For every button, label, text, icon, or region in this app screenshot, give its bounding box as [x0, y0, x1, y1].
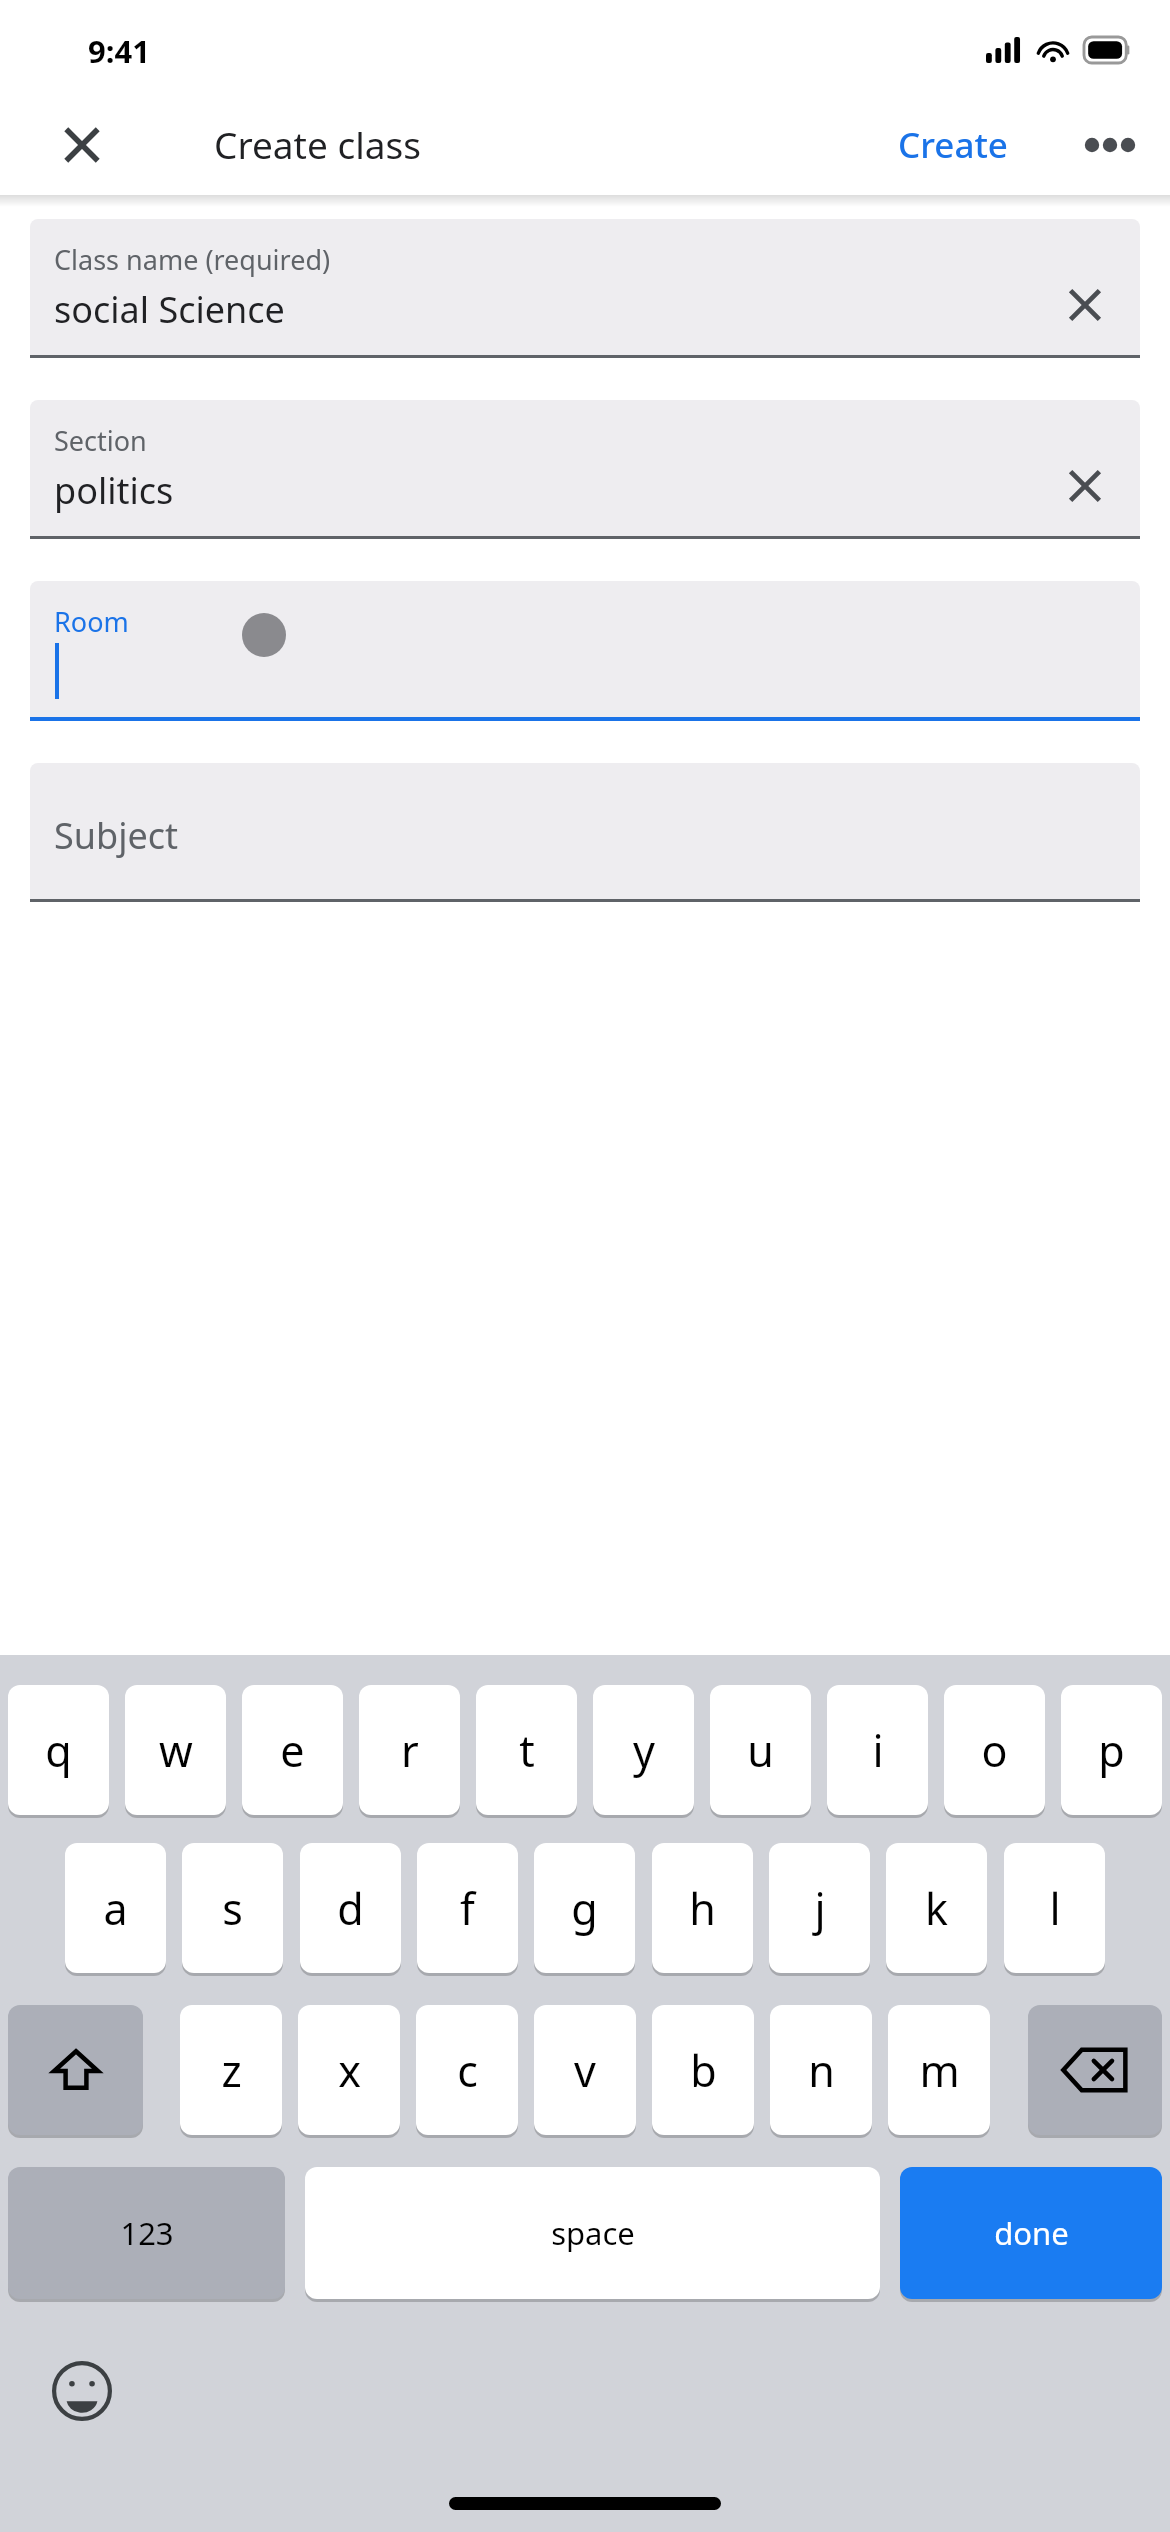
- staticText: p: [1098, 1721, 1125, 1780]
- button[interactable]: More options: [1064, 99, 1156, 191]
- staticText: u: [747, 1721, 774, 1780]
- button[interactable]: Clear text: [1046, 266, 1124, 344]
- staticText: Create: [898, 121, 1008, 169]
- button[interactable]: k: [886, 1843, 987, 1973]
- staticText: y: [633, 1721, 655, 1780]
- button[interactable]: Create: [884, 109, 1022, 181]
- staticText: t: [519, 1721, 535, 1780]
- staticText: k: [925, 1879, 948, 1938]
- button[interactable]: s: [182, 1843, 283, 1973]
- staticText: Section: [54, 422, 147, 459]
- staticText: s: [222, 1879, 243, 1938]
- staticText: w: [159, 1721, 193, 1780]
- staticText: o: [981, 1721, 1008, 1780]
- button[interactable]: i: [827, 1685, 928, 1815]
- button[interactable]: z: [180, 2005, 282, 2135]
- staticText: 9:41: [88, 30, 150, 72]
- staticText: i: [872, 1721, 884, 1780]
- staticText: l: [1049, 1879, 1061, 1938]
- staticText: politics: [54, 466, 174, 515]
- staticText: x: [338, 2041, 361, 2100]
- button[interactable]: f: [417, 1843, 518, 1973]
- button[interactable]: done: [900, 2167, 1162, 2299]
- button[interactable]: r: [359, 1685, 460, 1815]
- button[interactable]: u: [710, 1685, 811, 1815]
- button[interactable]: p: [1061, 1685, 1162, 1815]
- button[interactable]: x: [298, 2005, 400, 2135]
- staticText: v: [574, 2041, 596, 2100]
- staticText: q: [45, 1721, 72, 1780]
- staticText: a: [103, 1879, 128, 1938]
- button[interactable]: space: [305, 2167, 880, 2299]
- staticText: m: [919, 2041, 960, 2100]
- button[interactable]: o: [944, 1685, 1045, 1815]
- button[interactable]: Class name (required): [30, 219, 1140, 355]
- staticText: j: [814, 1879, 826, 1938]
- button[interactable]: 123: [8, 2167, 285, 2299]
- staticText: space: [551, 2212, 635, 2254]
- button[interactable]: Section: [30, 400, 1140, 536]
- button[interactable]: a: [65, 1843, 166, 1973]
- staticText: f: [460, 1879, 475, 1938]
- button[interactable]: w: [125, 1685, 226, 1815]
- button[interactable]: j: [769, 1843, 870, 1973]
- button[interactable]: l: [1004, 1843, 1105, 1973]
- button[interactable]: Subject: [30, 763, 1140, 899]
- button[interactable]: n: [770, 2005, 872, 2135]
- staticText: Create class: [214, 119, 421, 169]
- button[interactable]: e: [242, 1685, 343, 1815]
- staticText: z: [221, 2041, 242, 2100]
- button[interactable]: q: [8, 1685, 109, 1815]
- staticText: h: [689, 1879, 716, 1938]
- staticText: 123: [120, 2212, 174, 2254]
- button[interactable]: b: [652, 2005, 754, 2135]
- staticText: Subject: [54, 811, 179, 860]
- staticText: c: [457, 2041, 478, 2100]
- button[interactable]: Clear text: [1046, 447, 1124, 525]
- button[interactable]: Shift: [8, 2005, 143, 2135]
- button[interactable]: Backspace: [1028, 2005, 1162, 2135]
- button[interactable]: Close: [36, 99, 128, 191]
- button[interactable]: m: [888, 2005, 990, 2135]
- staticText: done: [994, 2212, 1069, 2254]
- button[interactable]: y: [593, 1685, 694, 1815]
- button[interactable]: t: [476, 1685, 577, 1815]
- button[interactable]: c: [416, 2005, 518, 2135]
- staticText: Room: [54, 603, 129, 640]
- staticText: Class name (required): [54, 241, 331, 278]
- staticText: social Science: [54, 285, 285, 334]
- button[interactable]: v: [534, 2005, 636, 2135]
- staticText: b: [690, 2041, 717, 2100]
- staticText: r: [401, 1721, 419, 1780]
- button[interactable]: d: [300, 1843, 401, 1973]
- staticText: e: [280, 1721, 305, 1780]
- button[interactable]: Emoji keyboard: [46, 2355, 118, 2427]
- button[interactable]: Room: [30, 581, 1140, 717]
- staticText: g: [571, 1879, 598, 1938]
- button[interactable]: h: [652, 1843, 753, 1973]
- staticText: n: [808, 2041, 835, 2100]
- button[interactable]: g: [534, 1843, 635, 1973]
- staticText: d: [337, 1879, 364, 1938]
